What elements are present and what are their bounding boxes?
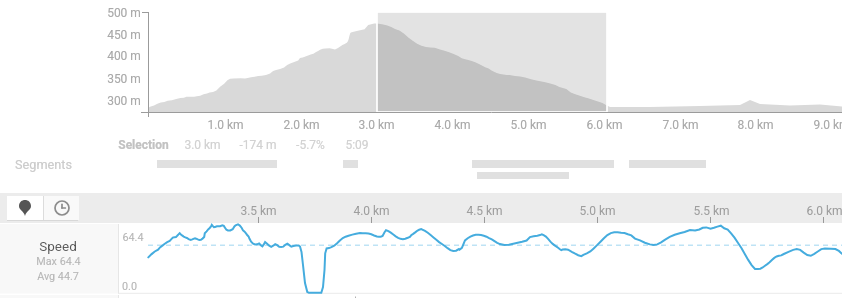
staticText: 5.0 km: [510, 118, 547, 132]
staticText: Segments: [15, 157, 72, 172]
staticText: Avg 44.7: [37, 270, 79, 283]
staticText: Speed: [39, 238, 77, 254]
staticText: 5.5 km: [693, 204, 730, 218]
staticText: 400 m: [107, 49, 141, 63]
staticText: 3.0 km: [358, 118, 395, 132]
staticText: 5:09: [345, 138, 369, 152]
staticText: 3.0 km: [184, 138, 221, 152]
staticText: Max 64.4: [36, 255, 81, 268]
staticText: 0.0: [122, 280, 137, 293]
staticText: -5.7%: [296, 138, 325, 152]
staticText: 6.0 km: [586, 118, 623, 132]
staticText: -174 m: [239, 138, 277, 152]
staticText: 500 m: [107, 6, 141, 20]
staticText: 350 m: [107, 72, 141, 86]
staticText: 9.0 km: [813, 118, 842, 132]
staticText: 6.0 km: [806, 204, 842, 218]
staticText: 8.0 km: [737, 118, 774, 132]
staticText: 3.5 km: [240, 204, 277, 218]
staticText: 300 m: [107, 94, 141, 108]
staticText: 1.0 km: [207, 118, 244, 132]
staticText: 4.0 km: [353, 204, 390, 218]
staticText: 64.4: [122, 231, 144, 244]
button[interactable]: By time: [44, 196, 79, 220]
staticText: 4.5 km: [466, 204, 503, 218]
staticText: Selection: [118, 138, 169, 152]
staticText: 2.0 km: [283, 118, 320, 132]
staticText: 450 m: [107, 28, 141, 42]
staticText: 7.0 km: [662, 118, 699, 132]
button[interactable]: By distance: [7, 196, 43, 220]
staticText: 5.0 km: [579, 204, 616, 218]
staticText: 4.0 km: [434, 118, 471, 132]
